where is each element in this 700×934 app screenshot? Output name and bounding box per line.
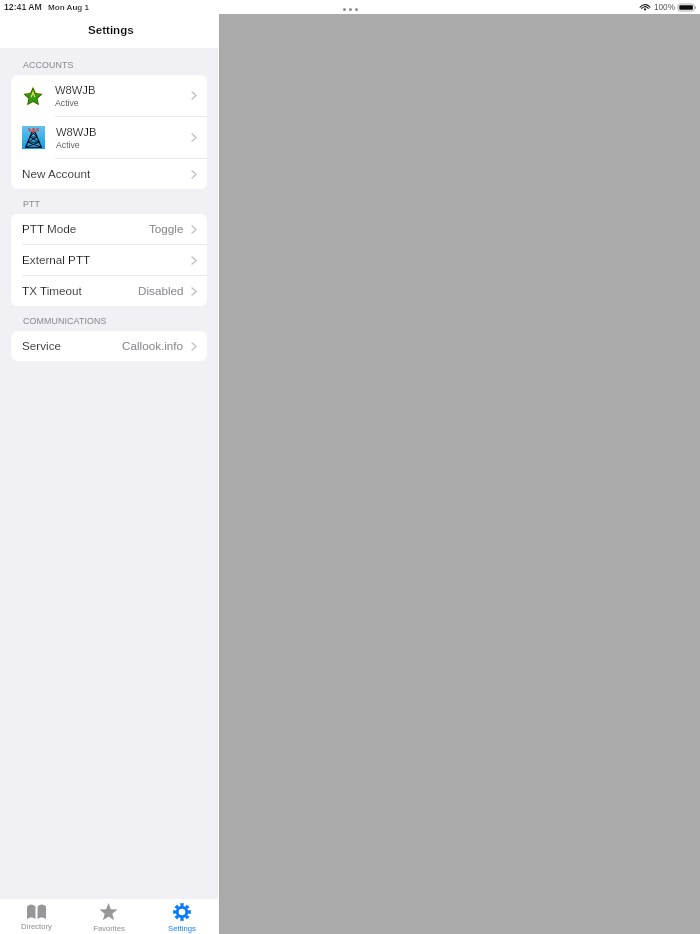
staticText: Settings <box>88 23 134 36</box>
staticText: Disabled <box>138 284 184 297</box>
button[interactable]: External PTT <box>11 245 207 275</box>
other: Wi-Fi <box>640 4 650 11</box>
staticText: PTT <box>23 199 41 209</box>
staticText: Active <box>55 98 79 108</box>
staticText: 12:41 AM <box>4 2 42 12</box>
button[interactable]: Service <box>11 331 207 361</box>
button[interactable]: Multitasking options <box>337 2 363 16</box>
staticText: Directory <box>21 922 52 931</box>
staticText: ACCOUNTS <box>23 60 74 70</box>
button[interactable]: PTT Mode <box>11 214 207 244</box>
button[interactable]: W8WJB <box>11 75 207 116</box>
staticText: TX Timeout <box>22 284 82 297</box>
staticText: W8WJB <box>55 84 96 97</box>
staticText: New Account <box>22 167 91 180</box>
button[interactable]: W8WJB <box>11 117 207 158</box>
staticText: W8WJB <box>56 126 97 139</box>
staticText: Active <box>56 140 80 150</box>
button[interactable]: Directory <box>0 899 72 934</box>
staticText: External PTT <box>22 253 91 266</box>
staticText: Favorites <box>93 924 125 933</box>
staticText: Service <box>22 339 61 352</box>
staticText: PTT Mode <box>22 222 77 235</box>
staticText: Toggle <box>149 222 184 235</box>
staticText: COMMUNICATIONS <box>23 316 107 326</box>
staticText: Mon Aug 1 <box>48 3 90 12</box>
other: Battery <box>678 4 696 11</box>
button[interactable]: TX Timeout <box>11 276 207 306</box>
button[interactable]: New Account <box>11 159 207 189</box>
staticText: Settings <box>168 924 196 933</box>
staticText: Callook.info <box>122 339 184 352</box>
button[interactable]: Settings <box>145 899 218 934</box>
staticText: 100% <box>654 3 675 12</box>
button[interactable]: Favorites <box>72 899 145 934</box>
